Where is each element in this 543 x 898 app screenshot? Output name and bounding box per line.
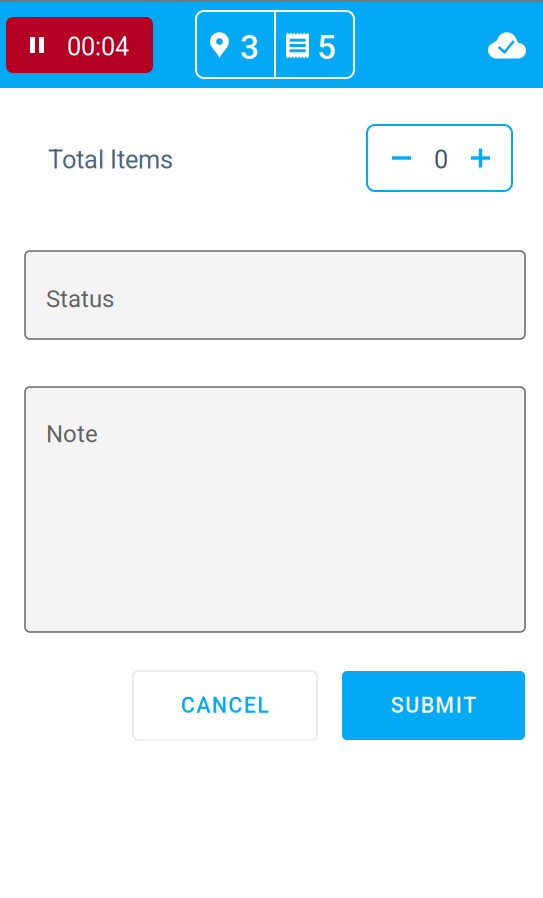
button[interactable]: Note — [25, 387, 525, 632]
button[interactable]: Increase — [456, 127, 505, 189]
button[interactable]: Stops — [196, 11, 275, 78]
button[interactable]: Decrease — [377, 127, 426, 189]
staticText: CANCEL — [181, 693, 269, 718]
button[interactable]: Synced — [479, 17, 535, 73]
staticText: 00:04 — [67, 32, 129, 62]
staticText: SUBMIT — [391, 693, 476, 718]
button[interactable]: CANCEL — [133, 671, 317, 740]
staticText: Total Items — [48, 145, 173, 175]
staticText: Note — [46, 420, 98, 448]
staticText: Status — [46, 285, 114, 313]
button[interactable]: Orders — [275, 11, 354, 78]
staticText: 5 — [317, 28, 336, 67]
staticText: 0 — [434, 145, 448, 175]
staticText: 3 — [240, 28, 259, 67]
button[interactable]: 00:04 — [6, 17, 153, 73]
button[interactable]: Status — [25, 251, 525, 339]
button[interactable]: SUBMIT — [342, 671, 525, 740]
